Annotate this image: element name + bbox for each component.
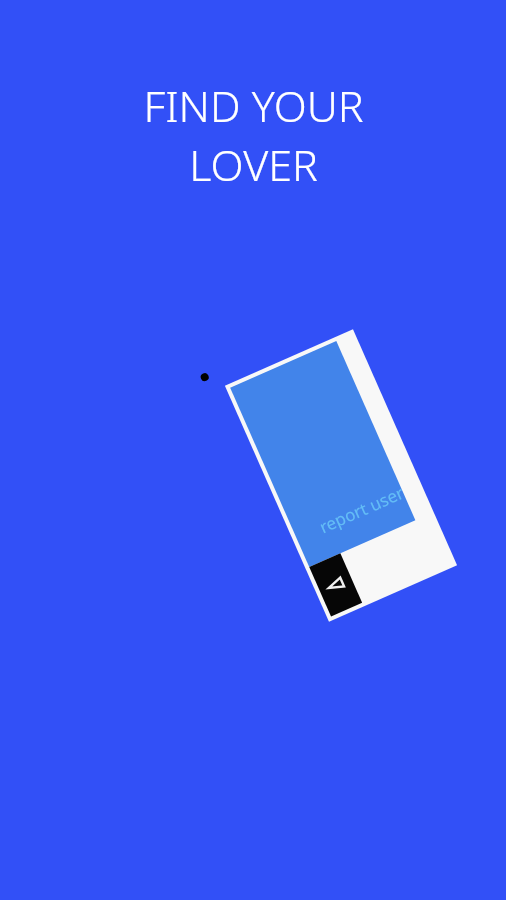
- staticText: report user: [316, 481, 407, 538]
- button[interactable]: Back: [313, 562, 358, 607]
- button[interactable]: FIND YOUR: [0, 76, 506, 194]
- staticText: LOVER: [189, 135, 318, 194]
- staticText: FIND YOUR: [143, 76, 364, 135]
